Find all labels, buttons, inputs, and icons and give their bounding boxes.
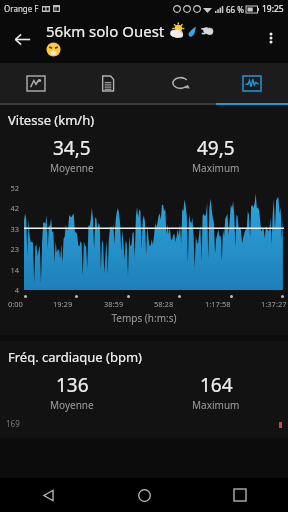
- button[interactable]: Laps: [144, 63, 216, 103]
- staticText: 58:28: [154, 299, 174, 309]
- staticText: 1:17:58: [205, 299, 231, 309]
- staticText: 136: [56, 372, 89, 398]
- staticText: Maximum: [192, 398, 240, 412]
- staticText: 49,5: [197, 135, 235, 161]
- staticText: 33: [0, 224, 19, 234]
- staticText: 14: [0, 265, 19, 275]
- button[interactable]: Recent apps: [192, 478, 288, 512]
- staticText: 169: [6, 418, 20, 429]
- staticText: 19:25: [262, 3, 284, 15]
- staticText: Temps (h:m:s): [0, 311, 288, 325]
- staticText: 38:59: [104, 299, 124, 309]
- staticText: 1:37:27: [261, 299, 287, 309]
- staticText: Orange F: [4, 3, 39, 14]
- staticText: Vitesse (km/h): [8, 111, 95, 129]
- staticText: Maximum: [192, 161, 240, 175]
- staticText: 42: [0, 203, 19, 213]
- button[interactable]: Vitesse (km/h): [0, 105, 288, 335]
- button[interactable]: Back: [0, 478, 96, 512]
- staticText: 52: [0, 183, 19, 193]
- button[interactable]: More options: [256, 23, 286, 53]
- button[interactable]: Back: [6, 23, 38, 55]
- button[interactable]: Graphs: [216, 63, 288, 103]
- button[interactable]: Map: [0, 63, 72, 103]
- staticText: Moyenne: [50, 161, 94, 175]
- staticText: 56km solo Ouest: [46, 21, 165, 41]
- staticText: 19:29: [53, 299, 73, 309]
- staticText: 23: [0, 244, 19, 254]
- staticText: Fréq. cardiaque (bpm): [8, 348, 143, 366]
- staticText: 66 %: [226, 4, 244, 15]
- button[interactable]: Details: [72, 63, 144, 103]
- staticText: 164: [200, 372, 233, 398]
- staticText: 34,5: [53, 135, 91, 161]
- button[interactable]: Home: [96, 478, 192, 512]
- button[interactable]: Fréq. cardiaque (bpm): [0, 341, 288, 438]
- staticText: 0:00: [8, 299, 23, 309]
- staticText: 4: [0, 285, 19, 295]
- staticText: Moyenne: [50, 398, 94, 412]
